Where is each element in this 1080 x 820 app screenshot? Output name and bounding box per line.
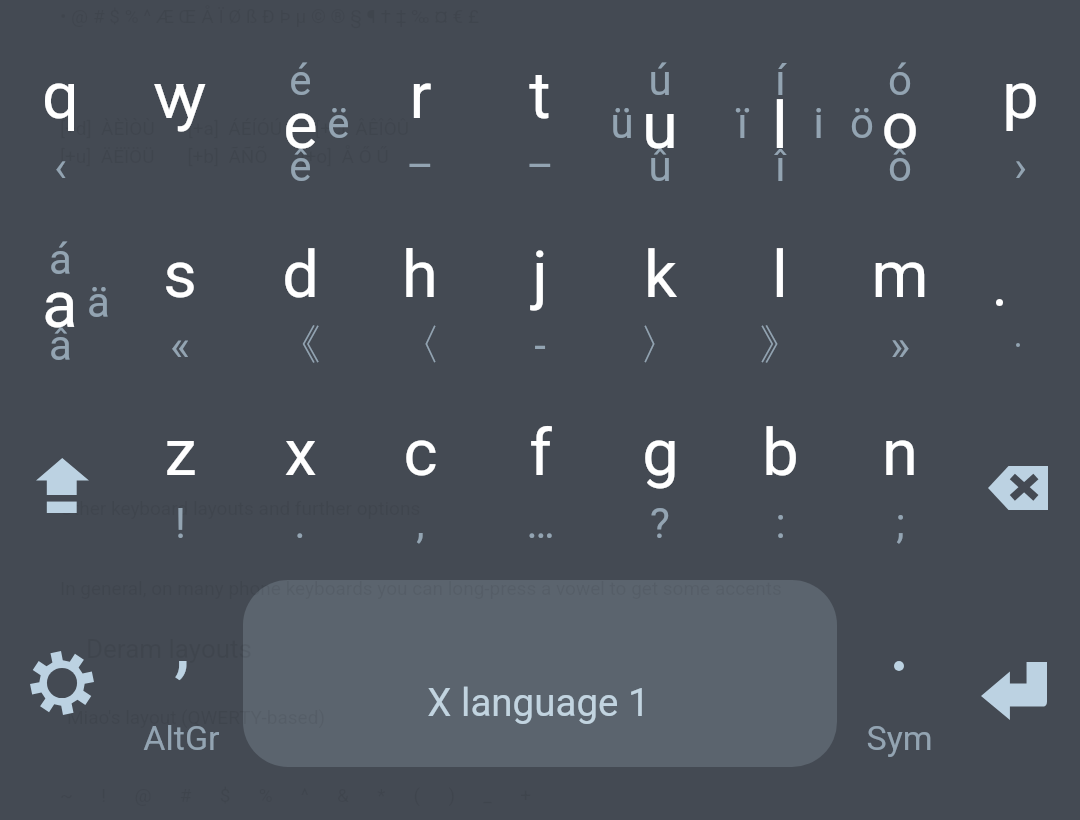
staticText: ;: [896, 499, 905, 548]
staticText: ë: [327, 99, 350, 148]
staticText: Miao's layout (QWERTY-based): [67, 706, 326, 728]
staticText: z: [164, 415, 197, 491]
staticText: !: [175, 499, 186, 548]
button[interactable]: Settings: [0, 580, 120, 768]
staticText: x: [284, 415, 317, 491]
staticText: -: [534, 321, 546, 370]
staticText: 》: [759, 319, 801, 372]
staticText: p: [1002, 58, 1039, 134]
staticText: :: [775, 499, 786, 548]
staticText: 《: [279, 319, 321, 372]
staticText: û: [648, 142, 672, 191]
staticText: [+u] ÄËÏÖÜ [+b] ÃÑÕ [+o] Å Ő Ű: [60, 145, 389, 167]
staticText: In general, on many phone keyboards you …: [60, 577, 782, 599]
staticText: ü: [610, 99, 634, 148]
button[interactable]: [840, 580, 960, 768]
staticText: Deram layouts: [86, 634, 253, 664]
button[interactable]: [243, 580, 837, 767]
staticText: X language 1: [427, 680, 650, 725]
staticText: .: [294, 499, 306, 548]
staticText: AltGr: [143, 718, 220, 758]
staticText: o: [881, 88, 919, 164]
staticText: ó: [888, 56, 912, 105]
staticText: i: [813, 99, 824, 148]
staticText: î: [775, 142, 786, 191]
staticText: q: [42, 58, 79, 134]
staticText: Other keyboard layouts and further optio…: [60, 497, 421, 519]
staticText: ,: [416, 499, 425, 548]
staticText: Sym: [866, 718, 933, 758]
staticText: e: [283, 88, 318, 164]
staticText: b: [762, 415, 799, 491]
staticText: 〉: [639, 319, 681, 372]
staticText: é: [289, 56, 312, 105]
staticText: ?: [650, 499, 670, 548]
staticText: ›: [1014, 142, 1027, 191]
staticText: ö: [850, 99, 874, 148]
staticText: ú: [648, 56, 672, 105]
staticText: s: [163, 237, 197, 313]
staticText: k: [644, 237, 677, 313]
staticText: í: [775, 56, 786, 105]
staticText: l: [772, 237, 788, 313]
staticText: ê: [289, 142, 312, 191]
staticText: ä: [87, 278, 110, 327]
staticText: g: [642, 415, 679, 491]
button[interactable]: Backspace: [960, 401, 1080, 514]
staticText: h: [402, 237, 438, 313]
staticText: ’: [173, 647, 190, 741]
staticText: t: [529, 58, 551, 134]
staticText: ô: [888, 142, 912, 191]
staticText: …: [526, 499, 555, 548]
staticText: n: [882, 415, 918, 491]
staticText: á: [49, 235, 72, 284]
staticText: c: [403, 415, 438, 491]
staticText: »: [890, 321, 910, 370]
staticText: f: [529, 415, 552, 491]
button[interactable]: [960, 223, 1080, 401]
staticText: j: [532, 237, 548, 313]
staticText: â: [49, 321, 72, 370]
staticText: l: [772, 88, 788, 164]
staticText: u: [642, 88, 678, 164]
button[interactable]: [120, 580, 240, 768]
staticText: –: [526, 142, 554, 191]
staticText: d: [282, 237, 319, 313]
button[interactable]: Enter: [960, 580, 1080, 768]
staticText: m: [871, 237, 929, 313]
staticText: «: [170, 321, 190, 370]
staticText: r: [409, 58, 432, 134]
staticText: –: [406, 142, 434, 191]
button[interactable]: Shift: [0, 401, 120, 514]
staticText: ï: [737, 99, 748, 148]
staticText: 〈: [399, 319, 441, 372]
staticText: [+d] ÀÈÌÒÙ [+a] ÁÉÍÓÚ [+c] ÂÊÎÔÛ: [60, 117, 410, 139]
staticText: a: [42, 267, 78, 343]
staticText: ‹: [54, 142, 67, 191]
staticText: vy: [153, 58, 197, 134]
